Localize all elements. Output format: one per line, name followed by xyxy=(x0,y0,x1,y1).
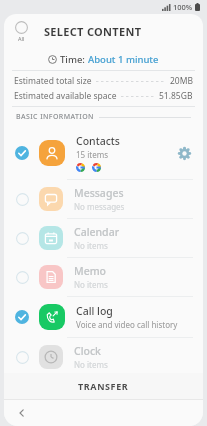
button[interactable]: Clock xyxy=(4,338,203,376)
button[interactable]: Calendar xyxy=(4,219,203,257)
button[interactable]: TRANSFER xyxy=(4,373,203,399)
staticText: 100% xyxy=(173,2,193,12)
staticText: Contacts xyxy=(76,134,120,148)
staticText: All xyxy=(18,35,25,42)
button[interactable]: Contacts xyxy=(4,127,203,179)
staticText: Voice and video call history xyxy=(76,319,178,330)
staticText: BASIC INFORMATION xyxy=(16,112,94,122)
staticText: 51.85GB xyxy=(159,90,193,102)
button[interactable]: Messages xyxy=(4,180,203,218)
staticText: Estimated available space xyxy=(14,90,117,102)
button[interactable]: Settings xyxy=(173,142,195,164)
staticText: TRANSFER xyxy=(78,380,129,392)
staticText: No items xyxy=(74,240,108,251)
button[interactable]: Call log xyxy=(4,297,203,337)
staticText: No messages xyxy=(74,201,125,212)
staticText: No items xyxy=(74,359,108,370)
staticText: SELECT CONTENT xyxy=(44,24,142,39)
staticText: Messages xyxy=(74,186,124,200)
staticText: Call log xyxy=(76,304,113,318)
staticText: Time: xyxy=(60,53,85,66)
button[interactable]: Memo xyxy=(4,258,203,296)
staticText: Memo xyxy=(74,264,107,278)
staticText: 15 items xyxy=(76,149,109,160)
staticText: Calendar xyxy=(74,225,120,239)
button[interactable]: All xyxy=(13,19,30,44)
button[interactable]: Back xyxy=(12,403,32,423)
staticText: No items xyxy=(74,279,108,290)
staticText: Clock xyxy=(74,344,101,358)
staticText: Estimated total size xyxy=(14,75,92,87)
staticText: 20MB xyxy=(170,75,193,87)
staticText: About 1 minute xyxy=(88,53,159,66)
